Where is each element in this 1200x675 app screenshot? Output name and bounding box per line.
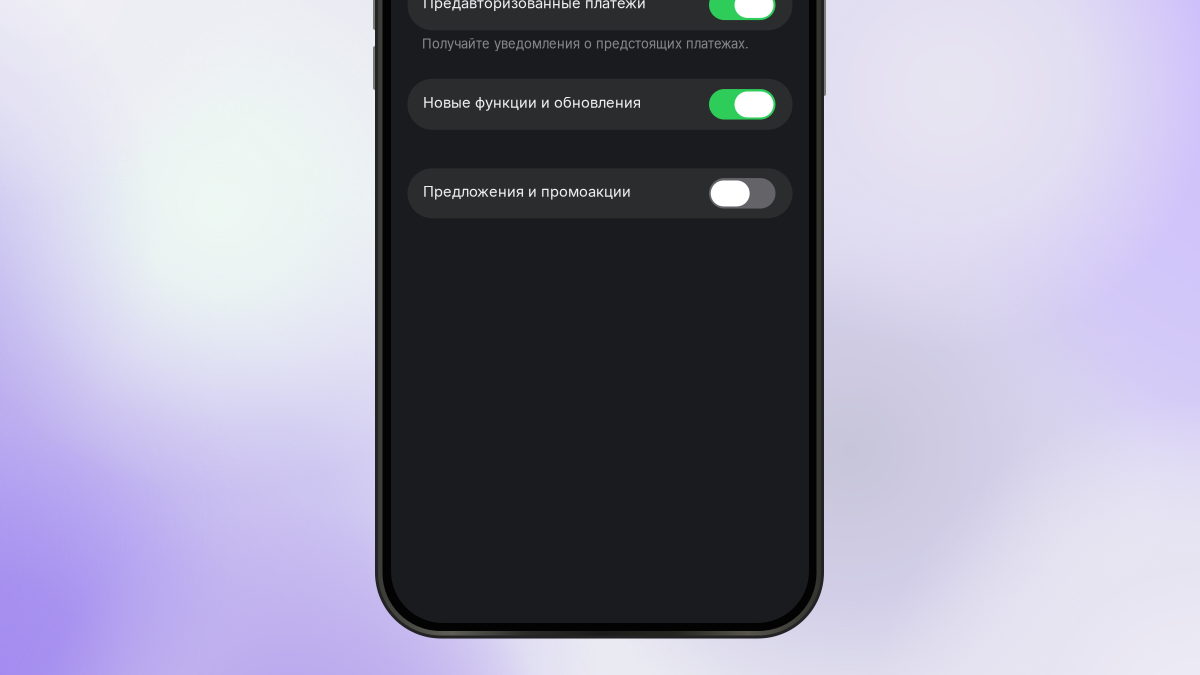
button[interactable]: Предавторизованные платежи <box>407 0 792 30</box>
staticText: Новые функции и обновления <box>423 93 641 111</box>
staticText: Предавторизованные платежи <box>423 0 646 12</box>
button[interactable]: Новые функции и обновления <box>407 79 792 130</box>
staticText: Предложения и промоакции <box>423 182 631 200</box>
staticText: Получайте уведомления о предстоящих плат… <box>422 36 749 51</box>
button[interactable]: Предложения и промоакции <box>407 168 792 218</box>
